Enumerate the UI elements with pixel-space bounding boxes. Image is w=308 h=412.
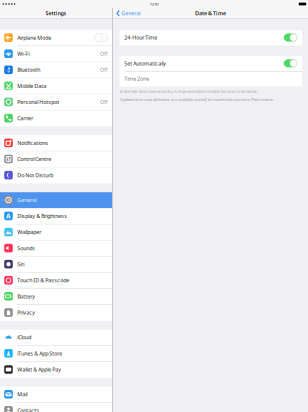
- staticText: Touch ID & Passcode: [17, 277, 69, 284]
- button[interactable]: Contacts: [0, 403, 112, 412]
- staticText: Airplane Mode: [17, 34, 51, 41]
- button[interactable]: Notifications: [0, 135, 112, 151]
- staticText: Personal Hotspot: [17, 98, 59, 105]
- staticText: Bluetooth: [17, 66, 40, 73]
- staticText: A: [6, 211, 11, 220]
- button[interactable]: Bluetooth: [0, 62, 112, 78]
- staticText: Date & Time: [195, 10, 226, 17]
- button[interactable]: Touch ID & Passcode: [0, 273, 112, 289]
- button[interactable]: A: [0, 208, 112, 224]
- staticText: Off: [100, 50, 108, 57]
- staticText: Display & Brightness: [17, 212, 67, 219]
- staticText: Time Zone: [124, 75, 149, 82]
- button[interactable]: Mobile Data: [0, 78, 112, 94]
- staticText: Off: [100, 98, 108, 105]
- button[interactable]: Privacy: [0, 305, 112, 321]
- staticText: Contacts: [17, 407, 39, 412]
- staticText: Carrier: [17, 115, 33, 122]
- button[interactable]: Wallpaper: [0, 224, 112, 240]
- button[interactable]: General: [0, 192, 112, 208]
- button[interactable]: Personal Hotspot: [0, 94, 112, 110]
- button[interactable]: Battery: [0, 289, 112, 305]
- staticText: Battery: [17, 293, 35, 300]
- staticText: Wallet & Apple Pay: [17, 366, 61, 373]
- button[interactable]: Airplane Mode: [0, 30, 112, 46]
- staticText: Set Automatically: [124, 60, 166, 67]
- staticText: Mail: [17, 391, 27, 398]
- staticText: 24-Hour Time: [124, 34, 157, 41]
- staticText: General: [121, 10, 140, 17]
- staticText: Updated time zone definitions are availa…: [120, 97, 274, 102]
- button[interactable]: Mail: [0, 387, 112, 403]
- staticText: Off: [100, 66, 108, 73]
- staticText: Sounds: [17, 245, 35, 252]
- button[interactable]: Siri: [0, 256, 112, 273]
- button[interactable]: Control Centre: [0, 151, 112, 167]
- button[interactable]: Do Not Disturb: [0, 167, 112, 183]
- staticText: Settings: [45, 10, 66, 17]
- staticText: General: [17, 196, 36, 204]
- staticText: Wi-Fi: [17, 50, 29, 57]
- staticText: Notifications: [17, 139, 48, 146]
- staticText: Privacy: [17, 309, 35, 316]
- button[interactable]: iCloud: [0, 330, 112, 346]
- staticText: iTunes & App Store: [17, 350, 62, 357]
- button[interactable]: Set Automatically: [119, 56, 302, 71]
- button[interactable]: Wi-Fi: [0, 46, 112, 62]
- staticText: Control Centre: [17, 155, 51, 162]
- button[interactable]: General: [116, 10, 140, 17]
- button[interactable]: 24-Hour Time: [119, 30, 302, 45]
- staticText: 10:40: [149, 1, 158, 7]
- staticText: Siri: [17, 261, 24, 268]
- button[interactable]: Carrier: [0, 110, 112, 126]
- staticText: Do Not Disturb: [17, 172, 53, 179]
- staticText: Mobile Data: [17, 82, 46, 89]
- staticText: Automatic time zone accuracy is improved…: [120, 88, 258, 94]
- button[interactable]: iTunes & App Store: [0, 346, 112, 362]
- staticText: Wallpaper: [17, 228, 41, 236]
- button[interactable]: Time Zone: [119, 71, 302, 86]
- button[interactable]: Wallet & Apple Pay: [0, 362, 112, 378]
- staticText: iCloud: [17, 334, 31, 341]
- button[interactable]: Sounds: [0, 240, 112, 256]
